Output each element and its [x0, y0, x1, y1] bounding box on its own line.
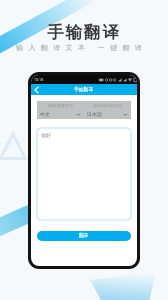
staticText: 中文 [40, 111, 50, 117]
staticText: 手输翻译 [47, 22, 121, 43]
button[interactable]: 你好 [37, 128, 131, 220]
button[interactable]: Back [31, 85, 41, 95]
staticText: 手输翻译 [74, 87, 94, 93]
button[interactable]: 翻译 [37, 231, 131, 241]
staticText: 输入翻译文本 一键翻译 [16, 43, 148, 53]
staticText: 10:18 [34, 77, 44, 82]
staticText: 请选择源语言 [48, 103, 74, 108]
staticText: 日本語 [87, 111, 102, 117]
staticText: 你好 [41, 132, 51, 138]
button[interactable]: 请选择源语言 [37, 101, 84, 119]
button[interactable]: 请选择目标语言 [84, 101, 131, 119]
staticText: 翻译 [79, 233, 89, 239]
staticText: 请选择目标语言 [93, 103, 123, 108]
